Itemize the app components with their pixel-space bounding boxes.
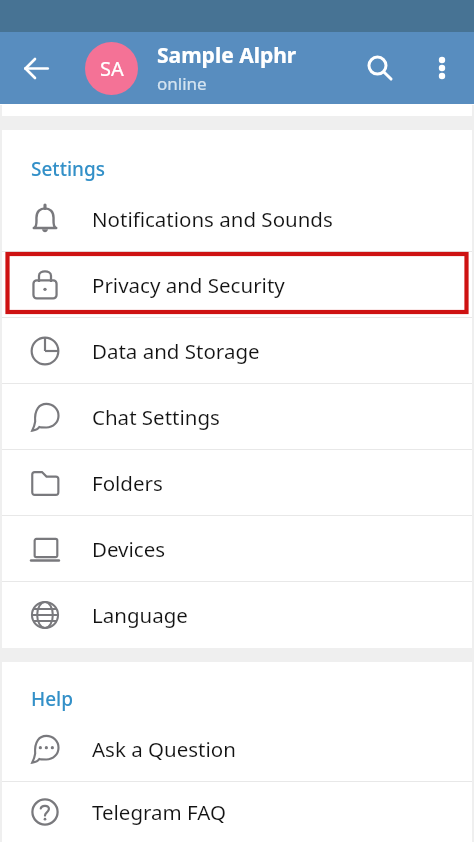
button[interactable]: More options [410,32,474,104]
staticText: Sample Alphr [157,41,297,70]
button[interactable]: Back [0,32,73,104]
staticText: Settings [31,156,105,182]
staticText: Telegram FAQ [92,798,226,826]
staticText: SA [100,55,124,82]
button[interactable]: Search [350,32,410,104]
staticText: online [157,72,207,95]
staticText: Privacy and Security [92,271,285,299]
button[interactable]: Ask a Question [0,716,474,782]
staticText: Language [92,601,188,629]
button[interactable]: Telegram FAQ [0,782,474,842]
staticText: Notifications and Sounds [92,205,333,233]
button[interactable]: Devices [0,516,474,582]
button[interactable]: Data and Storage [0,318,474,384]
staticText: Ask a Question [92,735,236,763]
button[interactable]: Folders [0,450,474,516]
staticText: Chat Settings [92,403,220,431]
button[interactable]: Privacy and Security [0,252,474,318]
button[interactable]: Language [0,582,474,648]
button[interactable]: Notifications and Sounds [0,186,474,252]
staticText: Help [31,686,74,712]
staticText: Data and Storage [92,337,260,365]
staticText: Devices [92,535,166,563]
staticText: Folders [92,469,163,497]
button[interactable]: Chat Settings [0,384,474,450]
